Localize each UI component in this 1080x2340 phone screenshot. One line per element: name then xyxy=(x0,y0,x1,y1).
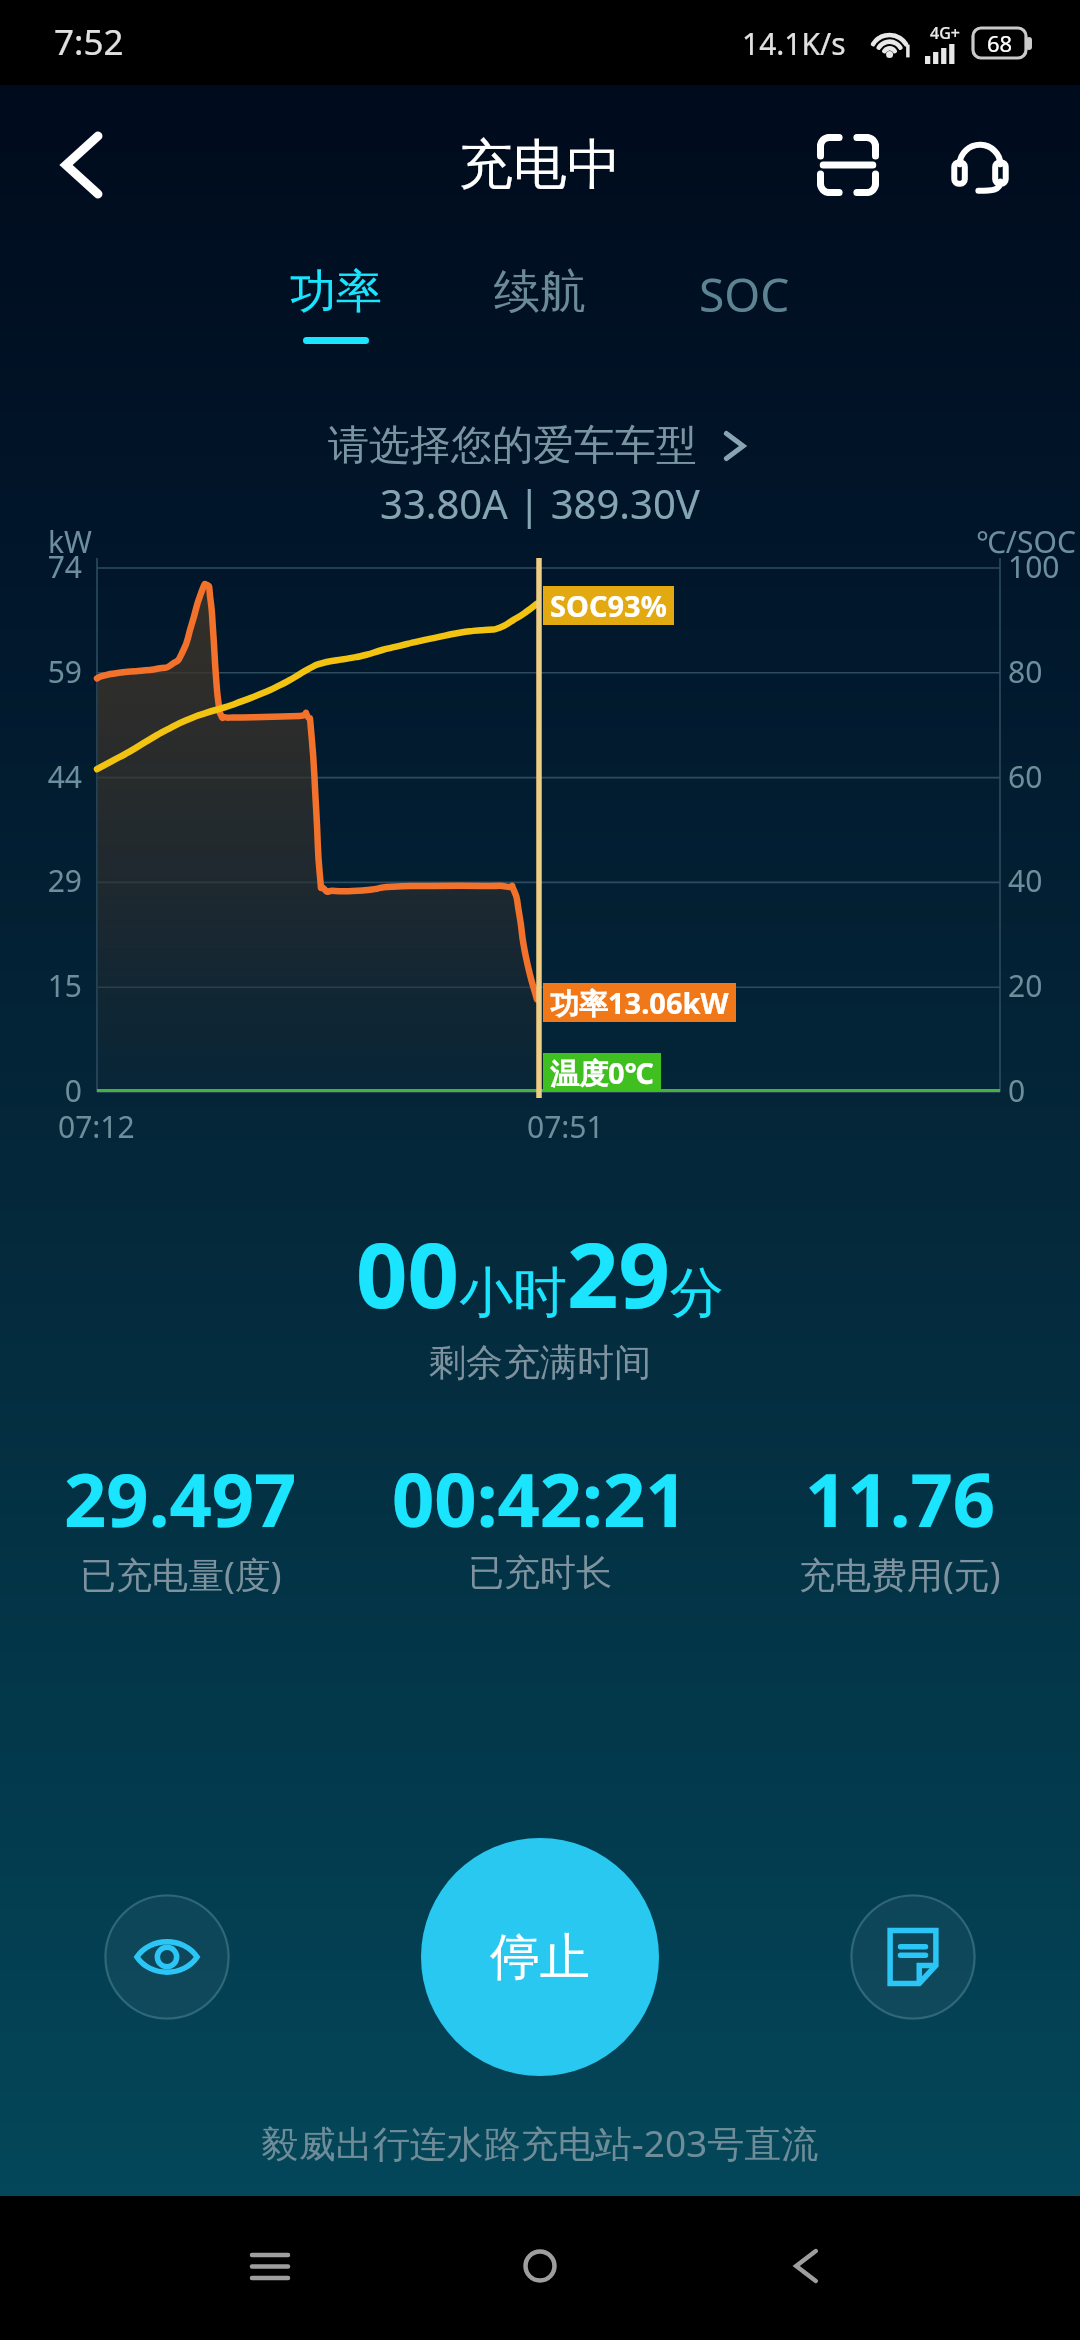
staticText: 60 xyxy=(1008,756,1043,797)
staticText: 07:51 xyxy=(527,1106,604,1147)
staticText: 续航 xyxy=(494,263,586,321)
staticText: 29.497 xyxy=(64,1448,297,1549)
staticText: 29 xyxy=(20,860,82,901)
staticText: 15 xyxy=(20,965,82,1006)
button[interactable]: 请选择您的爱车车型 xyxy=(328,420,753,472)
staticText: 请选择您的爱车车型 xyxy=(328,420,697,472)
staticText: 14.1K/s xyxy=(742,23,846,64)
staticText: SOC93% xyxy=(550,586,667,625)
staticText: 已充时长 xyxy=(468,1550,612,1595)
staticText: 100 xyxy=(1008,546,1060,587)
button[interactable]: Scan xyxy=(798,115,898,215)
staticText: 68 xyxy=(987,28,1013,58)
staticText: 20 xyxy=(1008,965,1043,1006)
staticText: 已充电量(度) xyxy=(80,1550,282,1599)
staticText: 07:12 xyxy=(58,1106,135,1147)
staticText: 29 xyxy=(567,1212,670,1335)
staticText: 剩余充满时间 xyxy=(429,1339,651,1386)
staticText: 分 xyxy=(670,1259,724,1327)
button[interactable]: 功率 xyxy=(256,263,416,373)
button[interactable]: Home xyxy=(492,2218,588,2314)
staticText: 功率 xyxy=(290,263,382,321)
staticText: 11.76 xyxy=(805,1448,996,1549)
staticText: 74 xyxy=(20,546,82,587)
button[interactable]: 续航 xyxy=(460,263,620,373)
staticText: 7:52 xyxy=(54,18,124,66)
staticText: SOC xyxy=(699,263,790,326)
button[interactable]: 停止 xyxy=(421,1838,659,2076)
button[interactable]: Back xyxy=(758,2218,854,2314)
staticText: 0 xyxy=(1008,1070,1026,1111)
staticText: 80 xyxy=(1008,651,1043,692)
button[interactable]: Back xyxy=(24,107,140,223)
button[interactable]: Customer service xyxy=(930,115,1030,215)
staticText: 00:42:21 xyxy=(392,1448,688,1549)
staticText: 充电中 xyxy=(459,131,621,199)
staticText: 功率13.06kW xyxy=(550,983,729,1022)
staticText: 小时 xyxy=(459,1259,567,1327)
staticText: 44 xyxy=(20,756,82,797)
button[interactable]: Preview xyxy=(104,1894,230,2020)
staticText: 毅威出行连水路充电站-203号直流 xyxy=(0,2117,1080,2168)
button[interactable]: SOC xyxy=(664,263,824,373)
staticText: 充电费用(元) xyxy=(799,1550,1001,1599)
button[interactable]: Recents xyxy=(222,2218,318,2314)
staticText: 4G+ xyxy=(930,22,960,44)
staticText: 00 xyxy=(356,1212,459,1335)
staticText: 33.80A | 389.30V xyxy=(380,476,700,530)
button[interactable]: Order details xyxy=(850,1894,976,2020)
staticText: ℃/SOC xyxy=(976,521,1076,562)
staticText: 温度0℃ xyxy=(550,1053,654,1091)
staticText: 0 xyxy=(20,1070,82,1111)
staticText: 59 xyxy=(20,651,82,692)
staticText: 40 xyxy=(1008,860,1043,901)
staticText: kW xyxy=(48,521,92,562)
staticText: 停止 xyxy=(490,1926,590,1989)
